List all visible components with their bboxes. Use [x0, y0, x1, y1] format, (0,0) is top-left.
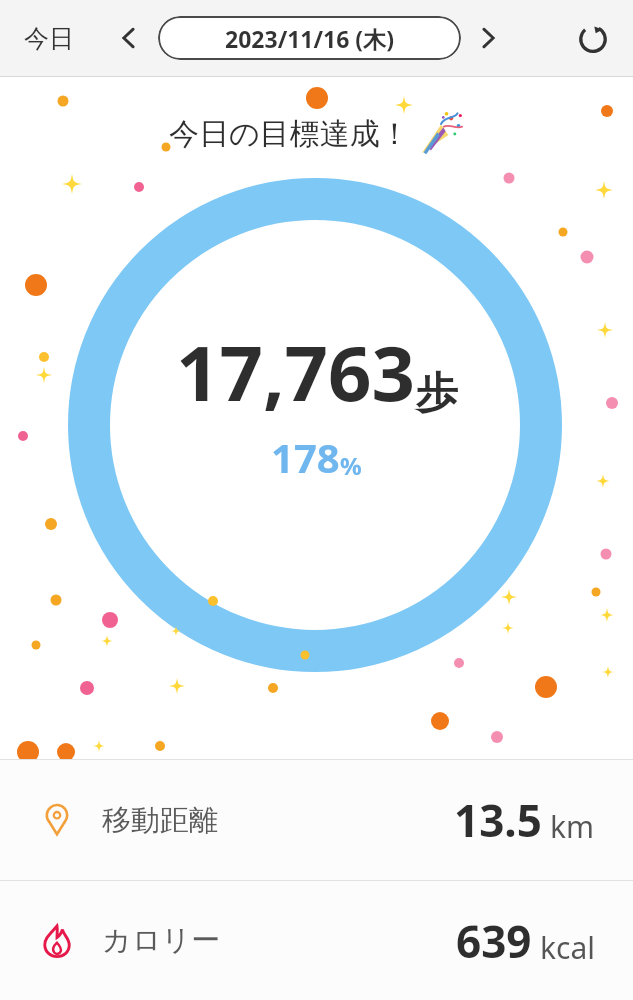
staticText: 移動距離: [102, 802, 218, 839]
button[interactable]: 今日: [18, 17, 80, 60]
staticText: 17,763: [176, 320, 416, 424]
staticText: カロリー: [102, 922, 221, 959]
button[interactable]: 2023/11/16 (木): [158, 16, 461, 60]
staticText: %: [340, 449, 362, 482]
staticText: 歩: [416, 367, 458, 420]
button[interactable]: 移動距離: [0, 760, 633, 880]
staticText: 今日の目標達成！: [169, 115, 410, 153]
button[interactable]: カロリー: [0, 881, 633, 1000]
button[interactable]: 前の日: [110, 19, 148, 57]
staticText: km: [550, 806, 595, 847]
staticText: kcal: [540, 927, 595, 968]
button[interactable]: 更新: [571, 16, 615, 60]
staticText: 639: [456, 911, 532, 971]
staticText: 2023/11/16 (木): [225, 23, 394, 54]
staticText: 13.5: [454, 790, 542, 850]
staticText: 178: [271, 430, 340, 484]
staticText: 今日: [24, 23, 74, 54]
button[interactable]: 次の日: [469, 19, 507, 57]
